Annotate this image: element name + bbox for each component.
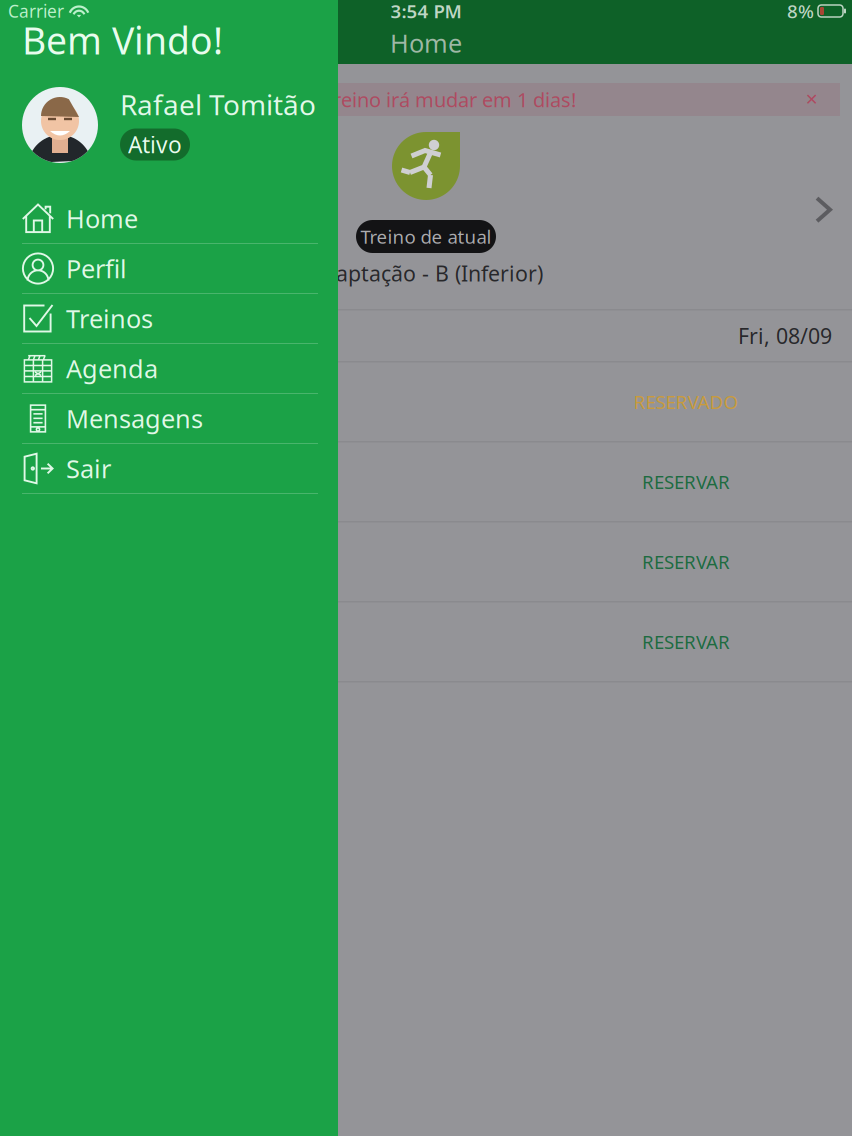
staticText: Rafael Tomitão [120, 86, 316, 123]
button[interactable]: Perfil [22, 244, 318, 294]
staticText: ✕ [805, 90, 818, 109]
staticText: Fri, 08/09 [738, 322, 832, 350]
staticText: Adaptação - B (Inferior) [309, 259, 543, 287]
button[interactable]: Seu treino irá mudar em 1 dias! [12, 83, 840, 116]
staticText: Bem Vindo! [22, 15, 223, 65]
button[interactable]: Treino de atual [0, 116, 852, 287]
button[interactable]: Treinos [22, 294, 318, 344]
staticText: Home [390, 26, 462, 60]
button[interactable]: RESERVAR [0, 602, 852, 682]
staticText: Seu treino irá mudar em 1 dias! [287, 86, 576, 113]
button[interactable]: Home [22, 194, 318, 244]
button[interactable]: Agenda [22, 344, 318, 394]
staticText: RESERVAR [642, 629, 730, 654]
staticText: Ativo [128, 129, 182, 159]
staticText: RESERVADO [633, 389, 738, 414]
staticText: RESERVAR [642, 549, 730, 574]
button[interactable]: RESERVAR [0, 522, 852, 602]
button[interactable]: Ativo [120, 128, 190, 160]
staticText: Agenda [66, 352, 158, 385]
staticText: 8% [787, 0, 814, 23]
button[interactable]: RESERVAR [0, 442, 852, 522]
staticText: 3:54 PM [390, 0, 461, 23]
staticText: RESERVAR [642, 469, 730, 494]
staticText: Treino de atual [360, 224, 491, 249]
staticText: Sair [66, 452, 111, 485]
button[interactable]: RESERVADO [0, 362, 852, 442]
staticText: Perfil [66, 252, 127, 285]
staticText: Mensagens [66, 402, 203, 435]
staticText: Treinos [66, 302, 153, 335]
button[interactable]: Sair [22, 444, 318, 494]
staticText: Home [66, 202, 138, 235]
staticText: Carrier [8, 0, 64, 22]
button[interactable]: Mensagens [22, 394, 318, 444]
